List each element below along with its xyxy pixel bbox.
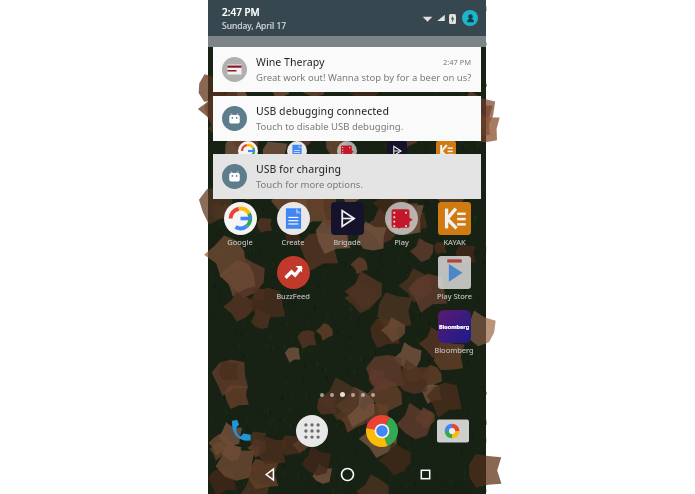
staticText: BuzzFeed xyxy=(276,291,310,301)
button[interactable]: Wine Therapy xyxy=(213,47,481,92)
button[interactable]: Chrome xyxy=(365,414,399,448)
staticText: USB debugging connected xyxy=(256,104,472,118)
staticText: Touch for more options. xyxy=(256,178,363,191)
staticText: Sunday, April 17 xyxy=(222,20,287,32)
staticText: Brigade xyxy=(333,237,361,247)
button[interactable]: Recents xyxy=(408,457,442,491)
staticText: Play Store xyxy=(437,291,472,301)
button[interactable]: USB debugging connected xyxy=(213,96,481,141)
button[interactable]: All apps xyxy=(295,414,329,448)
staticText: 2:47 PM xyxy=(443,57,472,67)
button[interactable]: Google xyxy=(214,202,266,247)
button[interactable]: Create xyxy=(267,202,319,247)
button[interactable]: Play Store xyxy=(428,256,480,301)
staticText: Create xyxy=(281,237,305,247)
staticText: Wine Therapy xyxy=(256,55,443,69)
staticText: Bloomberg xyxy=(439,323,470,330)
button[interactable]: User profile xyxy=(462,10,478,26)
staticText: Great work out! Wanna stop by for a beer… xyxy=(256,71,472,84)
staticText: Google xyxy=(227,237,253,247)
staticText: Bloomberg xyxy=(434,345,474,355)
staticText: Touch to disable USB debugging. xyxy=(256,120,404,133)
staticText: KAYAK xyxy=(443,237,466,247)
button[interactable]: USB for charging xyxy=(213,154,481,199)
button[interactable]: Back xyxy=(252,457,286,491)
staticText: 2:47 PM xyxy=(222,5,260,19)
staticText: USB for charging xyxy=(256,162,472,176)
button[interactable]: Photos xyxy=(436,414,470,448)
button[interactable]: Play xyxy=(375,202,427,247)
button[interactable]: Phone xyxy=(224,414,258,448)
button[interactable]: Brigade xyxy=(321,202,373,247)
button[interactable]: KAYAK xyxy=(428,202,480,247)
button[interactable]: BuzzFeed xyxy=(267,256,319,301)
button[interactable]: Home xyxy=(330,457,364,491)
button[interactable]: Bloomberg xyxy=(428,310,480,355)
staticText: Play xyxy=(394,237,409,247)
